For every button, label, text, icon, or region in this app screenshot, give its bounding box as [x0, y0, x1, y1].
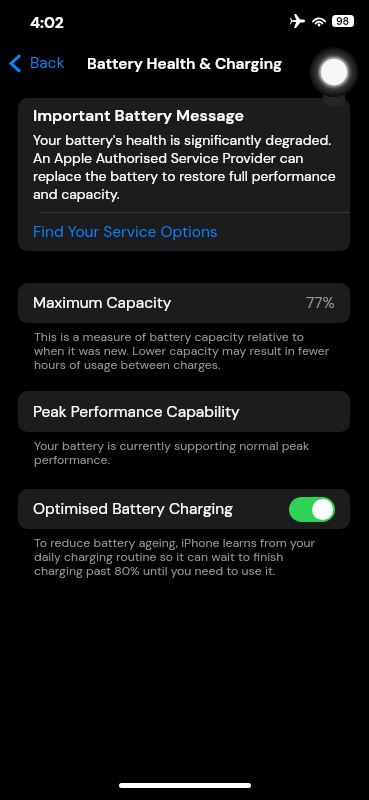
button[interactable]: AssistiveTouch: [307, 45, 361, 107]
button[interactable]: Back: [5, 49, 73, 77]
staticText: Find Your Service Options: [33, 222, 218, 242]
staticText: 4:02: [30, 13, 64, 33]
button[interactable]: Optimised Battery Charging: [18, 489, 350, 529]
button[interactable]: Find Your Service Options: [18, 213, 350, 251]
staticText: Maximum Capacity: [33, 293, 172, 313]
staticText: Important Battery Message: [33, 106, 244, 126]
staticText: Optimised Battery Charging: [33, 499, 233, 519]
staticText: Back: [30, 53, 65, 73]
staticText: 77%: [306, 293, 335, 313]
staticText: Your battery's health is significantly d…: [33, 131, 337, 203]
button[interactable]: Peak Performance Capability: [18, 391, 350, 432]
staticText: Battery Health & Charging: [87, 54, 283, 74]
button[interactable]: Optimised Battery Charging toggle: [289, 497, 335, 522]
staticText: Peak Performance Capability: [33, 402, 240, 422]
staticText: To reduce battery ageing, iPhone learns …: [34, 536, 330, 578]
staticText: This is a measure of battery capacity re…: [34, 330, 330, 372]
staticText: Your battery is currently supporting nor…: [34, 439, 330, 467]
staticText: 98: [336, 15, 350, 27]
button[interactable]: Maximum Capacity: [18, 283, 350, 323]
